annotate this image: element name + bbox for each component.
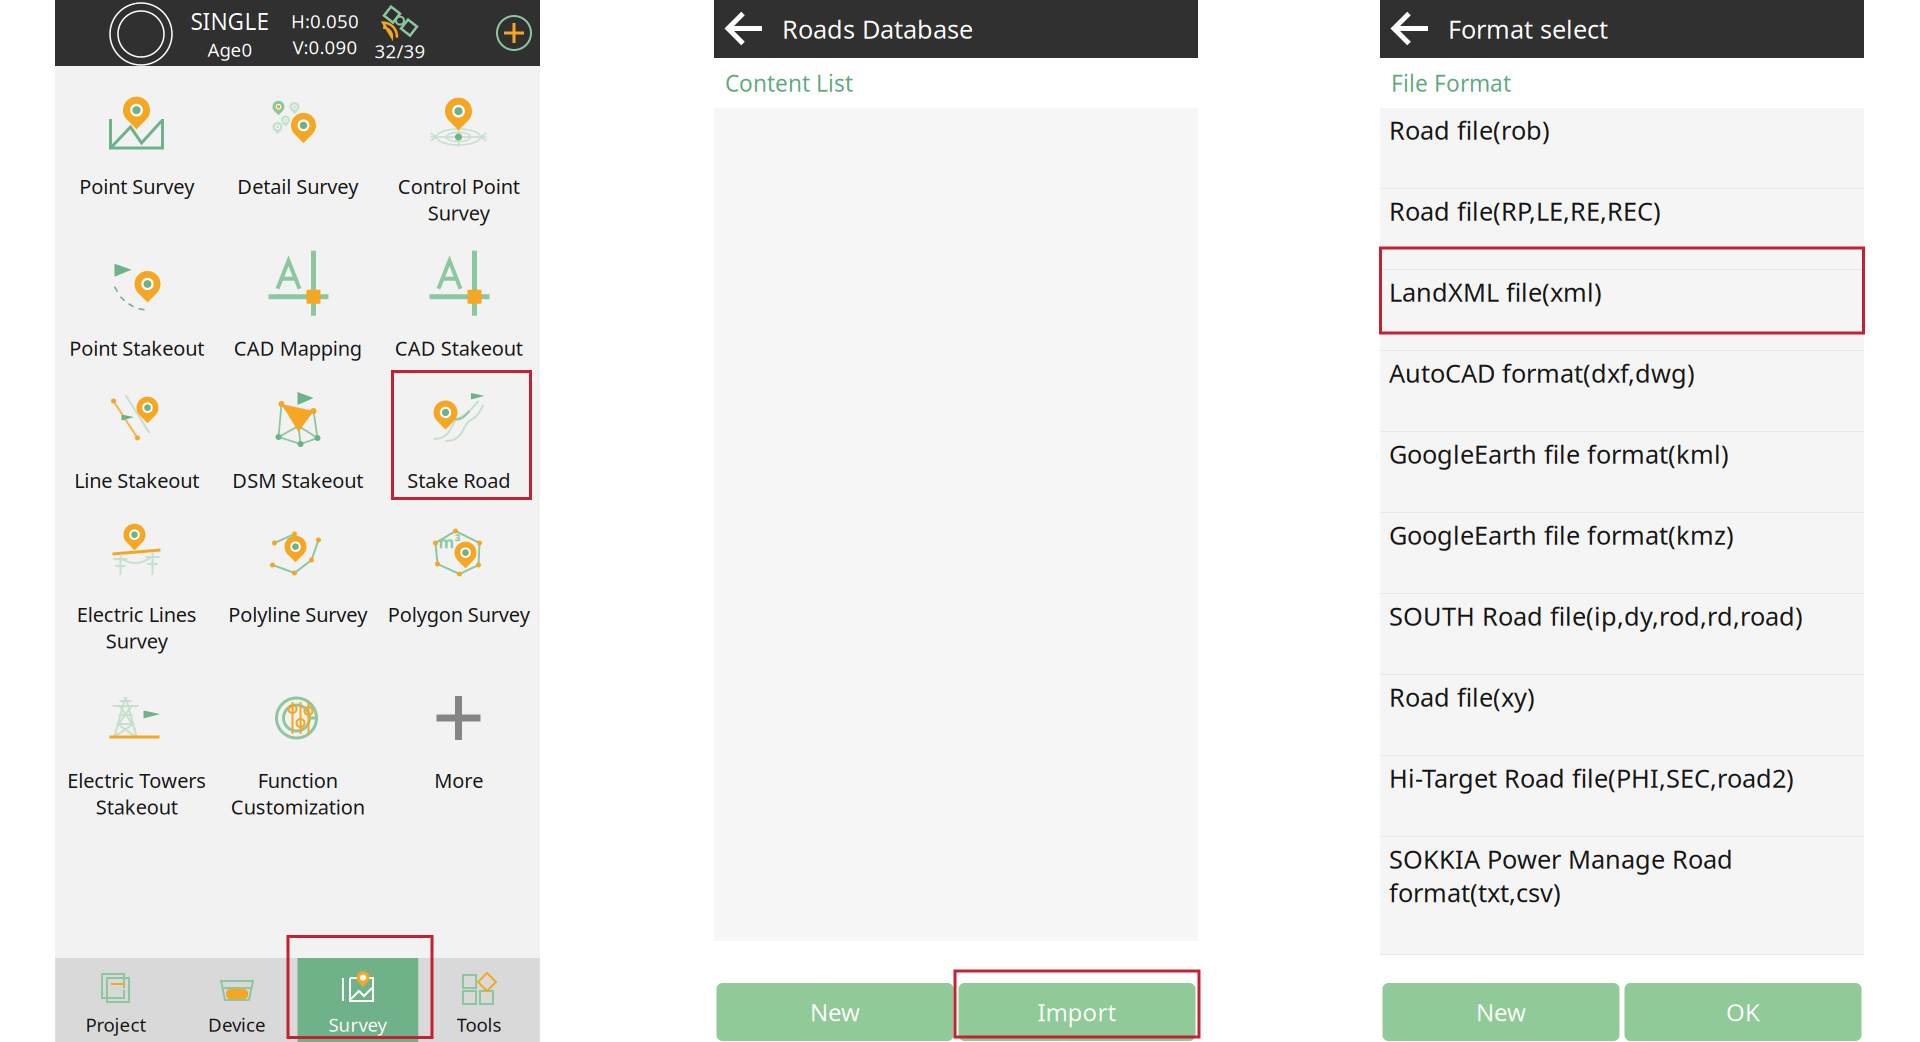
button[interactable]: Device	[176, 958, 297, 1042]
button[interactable]: DSM Stakeout	[217, 360, 378, 494]
staticText: Electric Towers Stakeout	[67, 767, 206, 820]
staticText: Content List	[725, 68, 853, 98]
button[interactable]: New	[1382, 983, 1619, 1041]
staticText: New	[1476, 996, 1526, 1028]
button[interactable]: m³	[378, 494, 539, 660]
staticText: More	[434, 767, 483, 794]
staticText: Stake Road	[407, 467, 510, 494]
staticText: LandXML file(xml)	[1389, 275, 1602, 309]
button[interactable]: Project	[55, 958, 176, 1042]
staticText: Road file(xy)	[1389, 680, 1535, 714]
staticText: Function Customization	[230, 767, 364, 820]
staticText: GoogleEarth file format(kmz)	[1389, 518, 1734, 552]
button[interactable]: OK	[1624, 983, 1861, 1041]
staticText: 32/39	[374, 39, 425, 63]
staticText: DSM Stakeout	[232, 467, 363, 494]
button[interactable]: New	[716, 983, 953, 1041]
staticText: CAD Mapping	[233, 335, 361, 361]
button[interactable]: Line Stakeout	[56, 360, 217, 494]
button[interactable]: CAD Stakeout	[378, 229, 539, 360]
button[interactable]: CAD Mapping	[217, 229, 378, 360]
button[interactable]: Road file(RP,LE,RE,REC)	[1380, 189, 1864, 270]
staticText: Point Stakeout	[69, 335, 204, 361]
staticText: SOKKIA Power Manage Road format(txt,csv)	[1389, 842, 1733, 909]
button[interactable]: SOKKIA Power Manage Road format(txt,csv)	[1380, 837, 1864, 955]
button[interactable]: Road file(rob)	[1380, 108, 1864, 189]
button[interactable]: Polyline Survey	[217, 494, 378, 660]
button[interactable]: Back	[714, 0, 782, 57]
button[interactable]: More	[378, 660, 539, 826]
staticText: Device	[208, 1012, 266, 1037]
staticText: Roads Database	[782, 12, 973, 46]
button[interactable]: Electric Towers Stakeout	[56, 660, 217, 826]
staticText: File Format	[1391, 68, 1511, 98]
button[interactable]: AutoCAD format(dxf,dwg)	[1380, 351, 1864, 432]
staticText: V:0.090	[292, 34, 357, 59]
staticText: AutoCAD format(dxf,dwg)	[1389, 356, 1695, 390]
staticText: GoogleEarth file format(kml)	[1389, 437, 1729, 471]
button[interactable]: LandXML file(xml)	[1380, 270, 1864, 351]
button[interactable]: Import	[958, 983, 1195, 1041]
staticText: Tools	[456, 1012, 501, 1037]
button[interactable]: Detail Survey	[217, 66, 378, 229]
staticText: Polyline Survey	[228, 601, 367, 628]
staticText: Detail Survey	[237, 173, 358, 200]
staticText: Control Point Survey	[397, 173, 519, 226]
button[interactable]: Survey	[297, 958, 418, 1042]
staticText: Hi-Target Road file(PHI,SEC,road2)	[1389, 761, 1794, 795]
button[interactable]: Add	[490, 9, 538, 57]
button[interactable]: Point Survey	[56, 66, 217, 229]
button[interactable]: GoogleEarth file format(kmz)	[1380, 513, 1864, 594]
button[interactable]: Electric Lines Survey	[56, 494, 217, 660]
staticText: SINGLE	[190, 6, 269, 36]
staticText: Polygon Survey	[387, 601, 529, 628]
staticText: Import	[1037, 996, 1116, 1028]
button[interactable]: Function Customization	[217, 660, 378, 826]
staticText: New	[810, 996, 860, 1028]
button[interactable]: Control Point Survey	[378, 66, 539, 229]
staticText: Age0	[207, 37, 252, 62]
button[interactable]: Tools	[418, 958, 539, 1042]
button[interactable]: Back	[1380, 0, 1448, 57]
staticText: H:0.050	[291, 9, 359, 33]
staticText: CAD Stakeout	[394, 335, 522, 361]
staticText: Project	[85, 1012, 146, 1037]
staticText: Road file(RP,LE,RE,REC)	[1389, 194, 1661, 228]
staticText: m³	[438, 531, 460, 553]
staticText: Road file(rob)	[1389, 113, 1550, 147]
button[interactable]: Point Stakeout	[56, 229, 217, 360]
button[interactable]: SOUTH Road file(ip,dy,rod,rd,road)	[1380, 594, 1864, 675]
staticText: Survey	[328, 1012, 387, 1037]
staticText: Electric Lines Survey	[76, 601, 196, 654]
staticText: Format select	[1448, 12, 1608, 46]
button[interactable]: GoogleEarth file format(kml)	[1380, 432, 1864, 513]
button[interactable]: Stake Road	[378, 360, 539, 494]
staticText: OK	[1726, 996, 1760, 1028]
staticText: SOUTH Road file(ip,dy,rod,rd,road)	[1389, 599, 1803, 633]
staticText: Point Survey	[79, 173, 194, 200]
button[interactable]: Road file(xy)	[1380, 675, 1864, 756]
button[interactable]: Hi-Target Road file(PHI,SEC,road2)	[1380, 756, 1864, 837]
staticText: Line Stakeout	[74, 467, 199, 494]
